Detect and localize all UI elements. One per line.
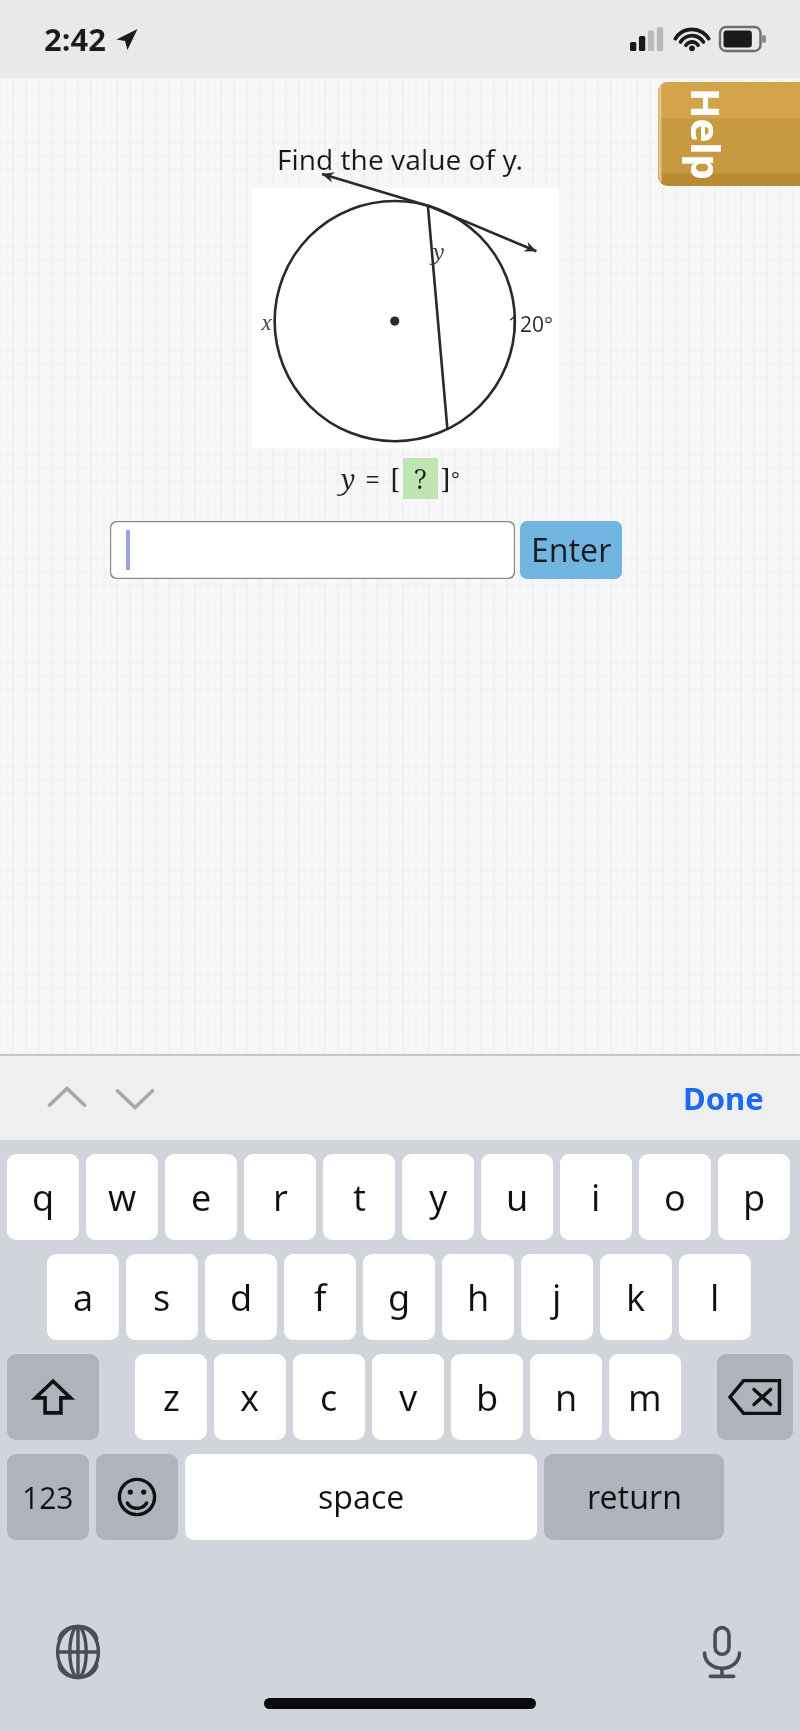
staticText: ° xyxy=(451,464,460,494)
staticText: x xyxy=(261,309,272,336)
staticText: o xyxy=(664,1173,686,1222)
staticText: y xyxy=(429,1173,448,1222)
staticText: p xyxy=(743,1173,766,1222)
staticText: z xyxy=(163,1373,180,1422)
staticText: space xyxy=(318,1475,405,1519)
button[interactable]: i xyxy=(560,1154,632,1240)
button[interactable]: Backspace xyxy=(717,1354,793,1440)
staticText: ] xyxy=(441,460,451,497)
button[interactable]: Done xyxy=(683,1077,764,1119)
button[interactable]: o xyxy=(639,1154,711,1240)
staticText: [ xyxy=(390,460,400,497)
button[interactable]: u xyxy=(481,1154,553,1240)
staticText: u xyxy=(506,1173,529,1222)
button[interactable]: t xyxy=(323,1154,395,1240)
button[interactable]: p xyxy=(718,1154,790,1240)
button[interactable]: n xyxy=(530,1354,602,1440)
button[interactable]: y xyxy=(402,1154,474,1240)
button[interactable]: a xyxy=(47,1254,119,1340)
staticText: 120° xyxy=(508,310,554,339)
staticText: Done xyxy=(683,1077,764,1119)
staticText: t xyxy=(353,1173,366,1222)
button[interactable]: Dictation xyxy=(686,1616,758,1688)
button[interactable]: space xyxy=(185,1454,537,1540)
staticText: r xyxy=(273,1173,288,1222)
button[interactable]: r xyxy=(244,1154,316,1240)
staticText: f xyxy=(314,1273,327,1322)
button[interactable]: f xyxy=(284,1254,356,1340)
staticText: v xyxy=(399,1373,418,1422)
button[interactable]: w xyxy=(86,1154,158,1240)
button[interactable]: Previous field xyxy=(36,1067,98,1129)
button[interactable]: c xyxy=(293,1354,365,1440)
staticText: Help xyxy=(680,88,734,180)
staticText: Find the value of y. xyxy=(0,140,800,178)
staticText: d xyxy=(230,1273,253,1322)
staticText: w xyxy=(108,1173,137,1222)
staticText: y xyxy=(341,460,356,497)
button[interactable] xyxy=(110,521,515,579)
staticText: i xyxy=(591,1173,601,1222)
button[interactable]: d xyxy=(205,1254,277,1340)
button[interactable]: v xyxy=(372,1354,444,1440)
staticText: y xyxy=(433,236,445,266)
button[interactable]: x xyxy=(214,1354,286,1440)
button[interactable]: j xyxy=(521,1254,593,1340)
button[interactable]: 123 xyxy=(7,1454,89,1540)
button[interactable]: m xyxy=(609,1354,681,1440)
button[interactable]: k xyxy=(600,1254,672,1340)
staticText: x xyxy=(240,1373,260,1422)
staticText: 123 xyxy=(22,1477,74,1518)
staticText: m xyxy=(628,1373,662,1422)
staticText: h xyxy=(467,1273,490,1322)
button[interactable]: Shift xyxy=(7,1354,99,1440)
staticText: 2:42 xyxy=(44,18,106,60)
button[interactable]: Emoji xyxy=(96,1454,178,1540)
button[interactable]: Switch keyboard language xyxy=(42,1616,114,1688)
staticText: g xyxy=(388,1273,411,1322)
button[interactable]: s xyxy=(126,1254,198,1340)
button[interactable]: Help xyxy=(658,82,800,186)
staticText: a xyxy=(73,1273,94,1322)
button[interactable]: return xyxy=(544,1454,724,1540)
staticText: s xyxy=(153,1273,171,1322)
button[interactable]: l xyxy=(679,1254,751,1340)
button[interactable]: Enter xyxy=(520,521,622,579)
staticText: c xyxy=(320,1373,338,1422)
button[interactable]: b xyxy=(451,1354,523,1440)
staticText: j xyxy=(552,1273,562,1322)
button[interactable]: z xyxy=(135,1354,207,1440)
button[interactable]: Next field xyxy=(104,1067,166,1129)
staticText: q xyxy=(32,1173,55,1222)
button[interactable]: g xyxy=(363,1254,435,1340)
staticText: e xyxy=(191,1173,212,1222)
staticText: k xyxy=(626,1273,646,1322)
staticText: return xyxy=(587,1475,682,1519)
staticText: b xyxy=(476,1373,499,1422)
button[interactable]: h xyxy=(442,1254,514,1340)
button[interactable]: q xyxy=(7,1154,79,1240)
staticText: n xyxy=(555,1373,578,1422)
staticText: ? xyxy=(414,460,427,497)
staticText: Enter xyxy=(531,528,612,572)
staticText: = xyxy=(365,460,381,497)
button[interactable]: e xyxy=(165,1154,237,1240)
staticText: l xyxy=(710,1273,720,1322)
